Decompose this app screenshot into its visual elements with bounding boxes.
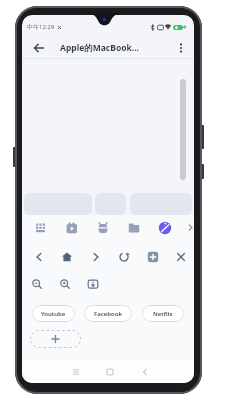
button[interactable] — [71, 367, 81, 377]
button[interactable] — [65, 221, 79, 235]
button[interactable] — [96, 221, 110, 235]
button[interactable] — [157, 24, 164, 31]
button[interactable]: Netflix — [142, 305, 184, 322]
button[interactable] — [61, 251, 73, 263]
button[interactable] — [164, 23, 172, 31]
button[interactable]: Youtube — [32, 305, 75, 322]
staticText: Facebook — [94, 310, 122, 318]
staticText: Apple的MacBook... — [60, 42, 139, 54]
button[interactable] — [158, 221, 172, 235]
staticText: Netflix — [153, 310, 173, 318]
button[interactable] — [57, 25, 62, 30]
button[interactable] — [31, 278, 43, 290]
button[interactable] — [34, 221, 48, 235]
button[interactable] — [33, 251, 45, 263]
button[interactable] — [90, 251, 102, 263]
button[interactable] — [140, 367, 150, 377]
button[interactable]: Facebook — [84, 305, 132, 322]
button[interactable] — [182, 24, 188, 30]
button[interactable] — [149, 24, 156, 31]
button[interactable] — [118, 251, 130, 263]
staticText: Youtube — [41, 310, 66, 318]
button[interactable] — [186, 223, 194, 232]
button[interactable] — [30, 330, 81, 348]
button[interactable] — [95, 193, 126, 215]
staticText: 中午12:29 — [27, 23, 55, 31]
button[interactable] — [175, 251, 187, 263]
button[interactable] — [105, 367, 115, 377]
button[interactable] — [87, 278, 99, 290]
button[interactable] — [33, 42, 45, 54]
button[interactable] — [147, 251, 159, 263]
button[interactable] — [59, 278, 71, 290]
button[interactable] — [175, 42, 187, 54]
button[interactable] — [127, 221, 141, 235]
